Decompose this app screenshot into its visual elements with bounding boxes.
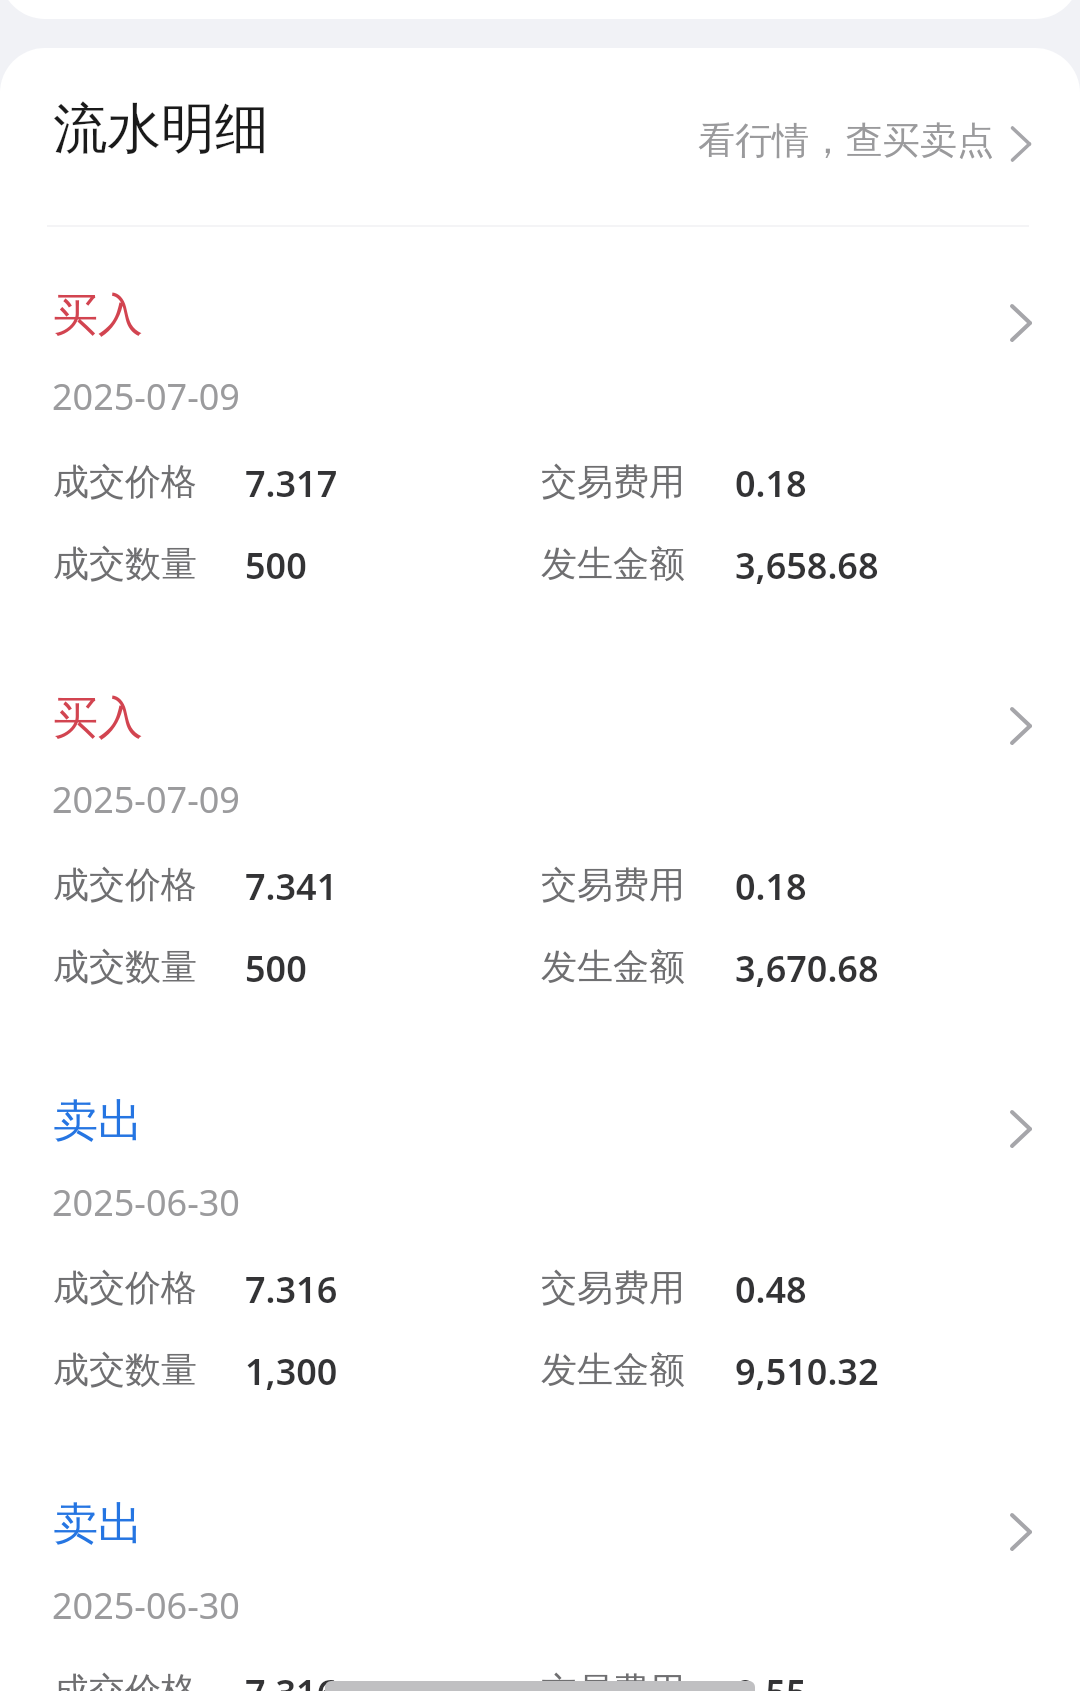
staticText: 发生金额	[541, 541, 685, 586]
staticText: 发生金额	[541, 944, 685, 989]
staticText: 成交价格	[53, 1265, 197, 1310]
staticText: 1,300	[245, 1347, 338, 1395]
staticText: 7.316	[245, 1265, 338, 1313]
staticText: 交易费用	[541, 459, 685, 504]
staticText: 7.341	[245, 862, 338, 910]
button[interactable]: 卖出	[0, 1436, 1080, 1691]
staticText: 交易费用	[541, 862, 685, 907]
staticText: 看行情，查买卖点	[698, 117, 994, 164]
other: 查看详情	[1004, 299, 1038, 347]
staticText: 买入	[53, 690, 143, 742]
staticText: 流水明细	[53, 95, 269, 163]
button[interactable]: 买入	[0, 630, 1080, 1033]
staticText: 卖出	[53, 1093, 143, 1145]
staticText: 卖出	[53, 1496, 143, 1548]
staticText: 成交数量	[53, 541, 197, 586]
other: 查看详情	[1004, 1508, 1038, 1556]
staticText: 交易费用	[541, 1265, 685, 1310]
staticText: 2025-06-30	[52, 1178, 240, 1227]
staticText: 成交价格	[53, 1668, 197, 1691]
other: 查看详情	[1004, 1105, 1038, 1153]
button[interactable]: 卖出	[0, 1033, 1080, 1436]
staticText: 发生金额	[541, 1347, 685, 1392]
staticText: 500	[245, 944, 307, 992]
staticText: 买入	[53, 287, 143, 339]
staticText: 2025-07-09	[52, 775, 240, 824]
staticText: 7.317	[245, 459, 338, 507]
staticText: 9,510.32	[735, 1347, 879, 1395]
button[interactable]: 买入	[0, 227, 1080, 630]
staticText: 交易费用	[541, 1668, 685, 1691]
staticText: 成交价格	[53, 459, 197, 504]
button[interactable]: 看行情，查买卖点	[698, 117, 1036, 164]
other: 查看详情	[1004, 702, 1038, 750]
staticText: 成交数量	[53, 1347, 197, 1392]
staticText: 3,658.68	[735, 541, 879, 589]
staticText: 7.316	[245, 1668, 338, 1691]
staticText: 成交价格	[53, 862, 197, 907]
staticText: 0.18	[735, 862, 807, 910]
staticText: 500	[245, 541, 307, 589]
staticText: 0.55	[735, 1668, 807, 1691]
staticText: 2025-07-09	[52, 372, 240, 421]
staticText: 0.48	[735, 1265, 807, 1313]
staticText: 成交数量	[53, 944, 197, 989]
staticText: 3,670.68	[735, 944, 879, 992]
staticText: 2025-06-30	[52, 1581, 240, 1630]
staticText: 0.18	[735, 459, 807, 507]
